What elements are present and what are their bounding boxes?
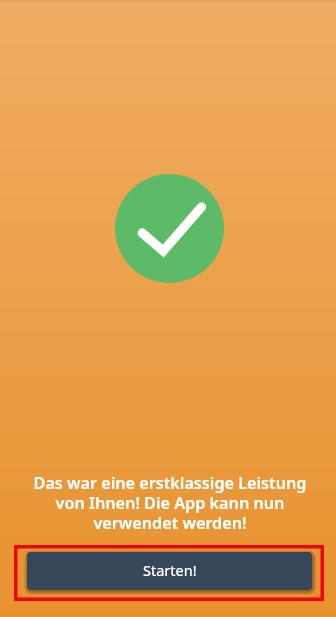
staticText: Das war eine erstklassige Leistung von I… <box>20 472 320 534</box>
staticText: Starten! <box>143 560 197 580</box>
button[interactable]: Starten! <box>27 552 312 590</box>
